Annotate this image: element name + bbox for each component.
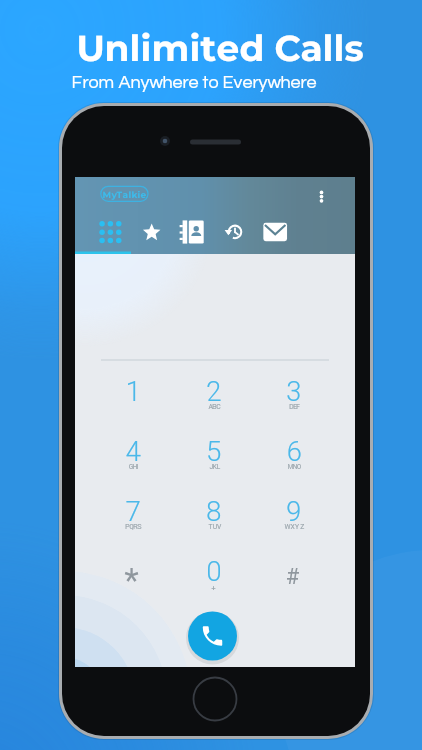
button[interactable]: MyTalkie (99, 185, 149, 202)
button[interactable]: Call (188, 611, 238, 661)
button[interactable]: Messages (257, 210, 297, 254)
button[interactable]: Favourites (134, 210, 174, 254)
button[interactable]: Dial key (107, 551, 157, 597)
button[interactable]: Dial key (107, 428, 157, 474)
button[interactable]: Dial key (188, 368, 238, 414)
button[interactable]: Contacts (176, 210, 216, 254)
button[interactable]: Recent calls (217, 210, 257, 254)
button[interactable]: More options (310, 181, 336, 207)
button[interactable]: Dial key (268, 428, 318, 474)
button[interactable]: Dial key (188, 551, 238, 597)
button[interactable]: Dial key (268, 368, 318, 414)
button[interactable]: Dial key (268, 488, 318, 534)
button[interactable]: Dial key (107, 368, 157, 414)
button[interactable]: Dial key (188, 488, 238, 534)
button[interactable]: Dial key (107, 488, 157, 534)
button[interactable]: Dialpad (92, 210, 132, 254)
button[interactable]: Dial key (268, 551, 318, 597)
button[interactable]: Dial key (188, 428, 238, 474)
